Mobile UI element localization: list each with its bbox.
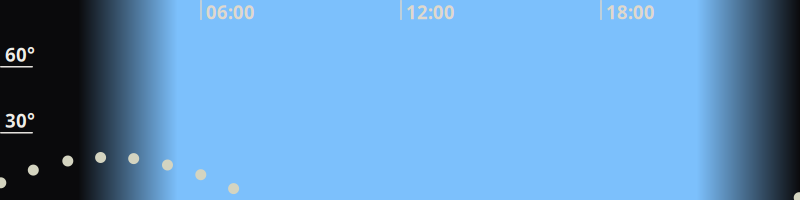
staticText: 60° [5,42,35,67]
staticText: 30° [5,108,35,133]
staticText: 18:00 [606,0,655,24]
staticText: 12:00 [406,0,455,24]
staticText: 06:00 [206,0,255,24]
